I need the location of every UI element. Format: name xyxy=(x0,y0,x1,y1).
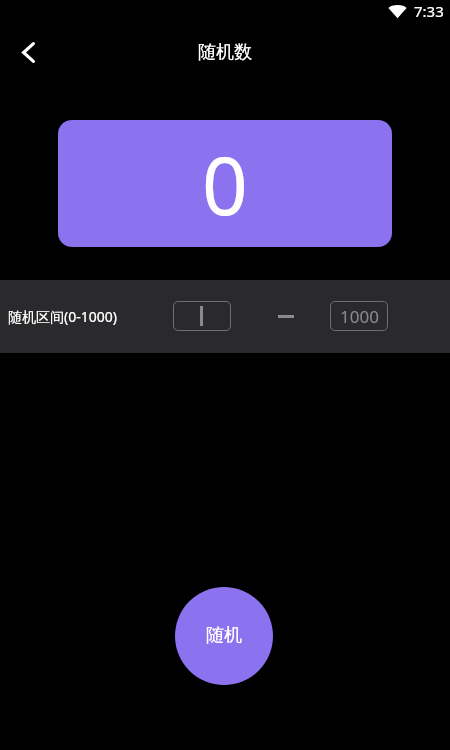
button[interactable]: 0 xyxy=(58,120,392,247)
button[interactable]: Maximum value xyxy=(330,301,388,331)
staticText: 1000 xyxy=(340,305,379,328)
staticText: 7:33 xyxy=(414,1,444,21)
staticText: 随机数 xyxy=(198,41,252,64)
staticText: 0 xyxy=(202,129,248,238)
staticText: 随机区间(0-1000) xyxy=(8,307,117,326)
button[interactable]: 随机 xyxy=(175,587,273,685)
button[interactable]: Back xyxy=(6,30,50,74)
staticText: 随机 xyxy=(206,624,242,647)
button[interactable]: Minimum value xyxy=(173,301,231,331)
